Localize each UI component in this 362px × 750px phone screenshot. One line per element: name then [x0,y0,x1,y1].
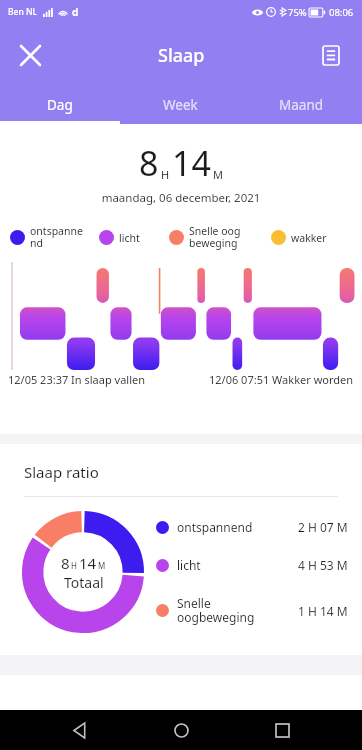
staticText: d [72,5,79,19]
staticText: ontspanne nd [30,224,83,250]
staticText: Dag [47,96,73,114]
staticText: H [161,167,170,182]
staticText: licht [119,231,140,245]
staticText: 14 [172,140,211,186]
staticText: Totaal [64,573,104,592]
staticText: Week [163,96,198,114]
staticText: M [213,167,223,182]
staticText: 12/06 07:51 Wakker worden [209,372,354,387]
staticText: Maand [279,96,324,114]
button[interactable]: Maand [241,86,362,124]
button[interactable]: licht [156,557,348,573]
staticText: 14 [79,553,97,573]
staticText: Snelle oog beweging [189,224,241,250]
button[interactable]: Week [120,86,241,124]
staticText: Ben NL [8,6,38,18]
staticText: 08:06 [329,6,354,19]
button[interactable]: Snelle oogbeweging [156,595,348,626]
staticText: ontspannend [177,519,298,535]
staticText: 75% [288,6,307,19]
button[interactable]: Recents [261,710,303,750]
staticText: 12/05 23:37 In slaap vallen [8,372,145,387]
staticText: M [98,560,106,571]
staticText: Slaap ratio [24,462,99,482]
staticText: maandag, 06 december, 2021 [0,190,362,206]
staticText: Slaap [158,43,205,68]
staticText: 8 [139,140,159,186]
button[interactable]: Dag [0,86,120,124]
staticText: Snelle oogbeweging [177,595,298,626]
staticText: wakker [291,231,327,245]
button[interactable]: Back [59,710,101,750]
staticText: 8 [61,553,70,573]
staticText: licht [177,557,298,573]
staticText: H [71,560,77,571]
staticText: 2 H 07 M [298,519,348,535]
button[interactable]: Home [160,710,202,750]
button[interactable]: Close [8,33,52,77]
button[interactable]: ontspannend [156,519,348,535]
staticText: 4 H 53 M [298,557,348,573]
button[interactable]: Sleep report [310,34,352,76]
staticText: 1 H 14 M [298,603,348,619]
